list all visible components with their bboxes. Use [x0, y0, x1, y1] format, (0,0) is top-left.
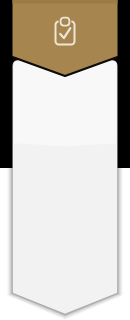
button[interactable]: Checklist ribbon badge [0, 0, 130, 320]
